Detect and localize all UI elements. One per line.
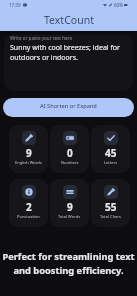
staticText: 2 bbox=[26, 200, 32, 214]
staticText: AI Shorten or Expand bbox=[40, 102, 97, 110]
staticText: 55 bbox=[105, 200, 117, 214]
staticText: Total Chars bbox=[100, 214, 121, 219]
button[interactable]: 9 bbox=[9, 125, 48, 173]
staticText: Write or paste your text here bbox=[10, 35, 72, 41]
staticText: 9 bbox=[67, 200, 73, 214]
staticText: 45 bbox=[105, 146, 117, 160]
staticText: 9 bbox=[26, 146, 32, 160]
staticText: 17:39 bbox=[9, 2, 21, 8]
button[interactable]: 0 bbox=[50, 125, 89, 173]
button[interactable]: 55 bbox=[91, 179, 130, 227]
staticText: Perfect for streamlining text and boosti… bbox=[1, 250, 136, 276]
button[interactable]: 2 bbox=[9, 179, 48, 227]
staticText: 60% bbox=[114, 2, 123, 8]
button[interactable]: Write or paste your text here bbox=[4, 35, 133, 91]
staticText: Sunny with cool breezes; ideal for outdo… bbox=[10, 43, 127, 62]
staticText: Total Words bbox=[58, 214, 81, 219]
staticText: 0 bbox=[67, 146, 73, 160]
button[interactable]: 9 bbox=[50, 179, 89, 227]
staticText: Punctuation bbox=[17, 214, 40, 219]
staticText: TextCount bbox=[44, 13, 94, 27]
staticText: English Words bbox=[15, 160, 42, 165]
button[interactable]: 45 bbox=[91, 125, 130, 173]
staticText: Numbers bbox=[61, 160, 79, 165]
button[interactable]: AI Shorten or Expand bbox=[3, 98, 134, 117]
staticText: Letters bbox=[104, 160, 118, 165]
